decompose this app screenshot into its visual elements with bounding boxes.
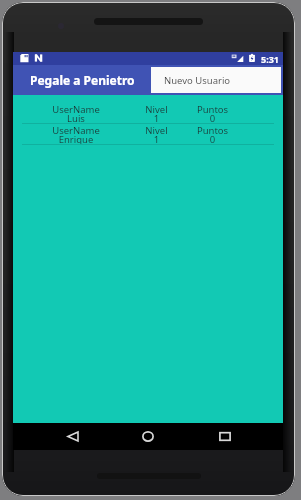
staticText: Nivel 1 — [139, 124, 174, 144]
staticText: Nivel 1 — [139, 103, 174, 123]
button[interactable]: Recent apps — [211, 423, 239, 450]
button[interactable]: UserName Luis — [13, 103, 283, 123]
staticText: Puntos 0 — [174, 103, 251, 123]
staticText: Puntos 0 — [174, 124, 251, 144]
button[interactable]: Pegale a Penietro — [30, 72, 135, 88]
button[interactable]: Home — [134, 423, 162, 450]
staticText: 5:31 — [261, 53, 279, 65]
button[interactable]: Nuevo Usuario — [151, 67, 281, 93]
button[interactable]: UserName Enrique — [13, 124, 283, 144]
staticText: UserName Luis — [13, 103, 139, 123]
staticText: UserName Enrique — [13, 124, 139, 144]
button[interactable]: Back — [59, 423, 87, 450]
staticText: Nuevo Usuario — [164, 74, 231, 87]
